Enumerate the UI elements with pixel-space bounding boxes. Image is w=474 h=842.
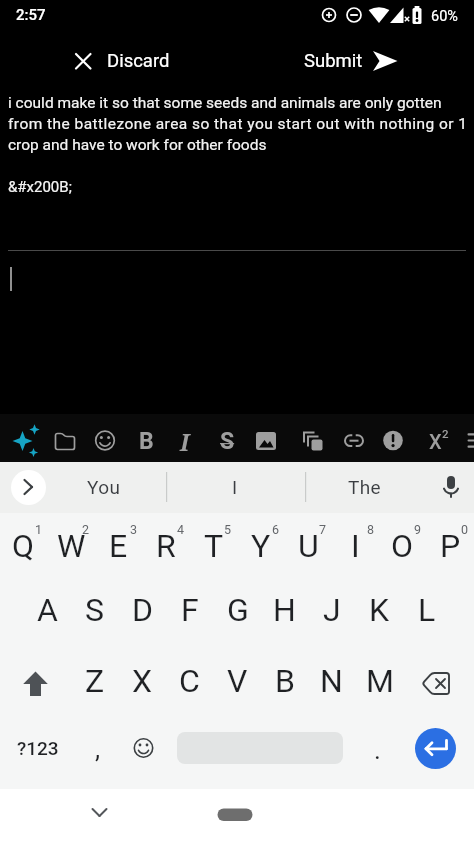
staticText: W [57, 527, 86, 565]
staticText: 2 [82, 522, 90, 537]
button[interactable] [120, 720, 167, 776]
button[interactable]: H [261, 579, 308, 641]
staticText: 7 [319, 522, 327, 537]
staticText: V [227, 662, 248, 700]
staticText: G [227, 591, 249, 629]
button[interactable]: I [155, 419, 215, 463]
button[interactable] [80, 795, 120, 831]
staticText: I [180, 426, 190, 457]
button[interactable]: F [166, 579, 213, 641]
staticText: Discard [107, 50, 170, 72]
staticText: 9 [414, 522, 422, 537]
staticText: R [156, 527, 176, 565]
staticText: I [232, 476, 238, 498]
staticText: 2:57 [16, 6, 46, 24]
button[interactable]: N [308, 650, 355, 712]
button[interactable]: B [261, 650, 308, 712]
button[interactable] [292, 422, 328, 458]
button[interactable] [68, 44, 180, 78]
staticText: from the battlezone area so that you sta… [8, 115, 468, 133]
button[interactable]: L [403, 579, 450, 641]
button[interactable] [294, 44, 404, 78]
staticText: F [181, 591, 199, 629]
button[interactable]: S [71, 579, 118, 641]
staticText: C [179, 662, 200, 700]
button[interactable] [87, 422, 123, 458]
button[interactable]: A [24, 579, 71, 641]
staticText: 3 [130, 522, 138, 537]
staticText: M [366, 662, 394, 700]
button[interactable]: V [214, 650, 261, 712]
button[interactable]: Z [71, 650, 118, 712]
button[interactable]: X [119, 650, 166, 712]
button[interactable] [210, 800, 260, 830]
staticText: 0 [461, 522, 469, 537]
button[interactable]: Y [237, 515, 284, 577]
button[interactable]: R [142, 515, 189, 577]
staticText: i could make it so that some seeds and a… [8, 94, 442, 112]
button[interactable]: W [48, 515, 95, 577]
button[interactable]: ?123 [8, 720, 68, 776]
button[interactable]: O [379, 515, 426, 577]
staticText: You [87, 476, 121, 498]
button[interactable]: M [356, 650, 403, 712]
staticText: N [320, 662, 343, 700]
staticText: I [351, 527, 360, 565]
button[interactable] [47, 422, 83, 458]
staticText: 60% [431, 8, 458, 25]
staticText: ?123 [17, 737, 59, 759]
staticText: T [204, 527, 224, 565]
button[interactable]: You [44, 462, 164, 512]
staticText: U [298, 527, 319, 565]
button[interactable] [12, 656, 60, 712]
staticText: , [95, 734, 101, 764]
button[interactable]: J [308, 579, 355, 641]
button[interactable]: E [95, 515, 142, 577]
button[interactable]: D [119, 579, 166, 641]
button[interactable]: T [190, 515, 237, 577]
button[interactable] [250, 422, 286, 458]
button[interactable] [6, 422, 42, 458]
staticText: B [139, 428, 154, 455]
button[interactable]: C [166, 650, 213, 712]
button[interactable] [432, 464, 472, 510]
staticText: 6 [272, 522, 280, 537]
button[interactable]: , [78, 721, 118, 777]
staticText: Z [85, 662, 105, 700]
button[interactable] [412, 656, 462, 712]
staticText: D [132, 591, 153, 629]
staticText: 5 [224, 522, 232, 537]
staticText: Y [251, 527, 271, 565]
staticText: K [369, 591, 390, 629]
button[interactable] [334, 422, 370, 458]
staticText: 4 [177, 522, 185, 537]
button[interactable]: I [175, 462, 295, 512]
staticText: Q [12, 527, 35, 565]
staticText: E [109, 527, 128, 565]
button[interactable]: B [116, 419, 176, 463]
button[interactable] [11, 470, 46, 505]
staticText: B [275, 662, 295, 700]
button[interactable]: U [285, 515, 332, 577]
button[interactable] [412, 422, 452, 458]
staticText: 8 [367, 522, 375, 537]
button[interactable] [375, 422, 411, 458]
staticText: X [429, 430, 442, 453]
staticText: L [418, 591, 436, 629]
staticText: Submit [304, 50, 363, 72]
button[interactable] [0, 85, 474, 245]
button[interactable]: . [357, 722, 397, 778]
staticText: H [273, 591, 296, 629]
staticText: P [440, 527, 461, 565]
button[interactable]: The [310, 462, 420, 512]
button[interactable]: P [427, 515, 474, 577]
button[interactable]: G [214, 579, 261, 641]
button[interactable]: Q [0, 515, 47, 577]
button[interactable]: K [356, 579, 403, 641]
staticText: 2 [442, 427, 449, 440]
staticText: X [132, 662, 153, 700]
button[interactable]: I [332, 515, 379, 577]
button[interactable]: S [197, 419, 257, 463]
button[interactable] [415, 728, 456, 769]
